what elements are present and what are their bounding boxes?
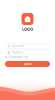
- button[interactable]: Password: [5, 50, 50, 54]
- staticText: LOGIN: [23, 62, 31, 66]
- staticText: Username: [11, 44, 24, 48]
- staticText: Remember me: [8, 55, 28, 59]
- staticText: LOGO: [22, 26, 33, 32]
- staticText: Password: [11, 50, 23, 54]
- button[interactable]: Remember me: [5, 56, 50, 58]
- button[interactable]: Username: [5, 44, 50, 48]
- button[interactable]: LOGIN: [5, 61, 50, 67]
